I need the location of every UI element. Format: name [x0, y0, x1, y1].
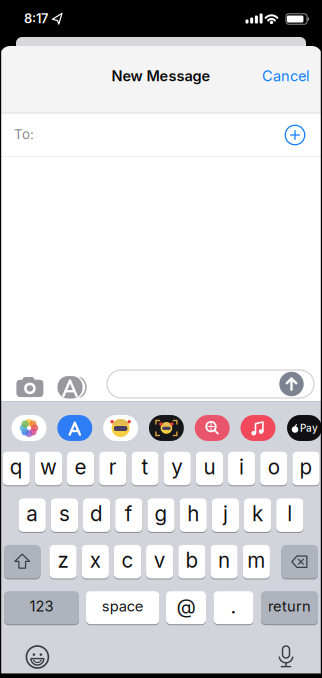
staticText: Cancel	[262, 67, 310, 85]
staticText: j	[223, 501, 228, 526]
button[interactable]: Apps	[57, 374, 91, 400]
button[interactable]: n	[210, 544, 238, 579]
button[interactable]: v	[146, 544, 173, 579]
staticText: g	[154, 501, 167, 526]
button[interactable]: z	[49, 544, 77, 579]
staticText: v	[154, 548, 166, 573]
staticText: o	[268, 454, 280, 479]
button[interactable]: Delete	[281, 544, 318, 579]
button[interactable]: y	[164, 451, 191, 486]
button[interactable]: l	[276, 497, 303, 533]
button[interactable]: h	[180, 497, 207, 533]
button[interactable]: k	[244, 497, 271, 533]
button[interactable]: q	[3, 451, 30, 486]
button[interactable]: Emoji	[25, 645, 49, 669]
button[interactable]: Photos	[11, 415, 46, 441]
button[interactable]: c	[114, 544, 141, 579]
staticText: s	[59, 501, 70, 526]
staticText: a	[26, 501, 38, 526]
staticText: m	[247, 548, 265, 573]
button[interactable]: g	[147, 497, 175, 533]
button[interactable]: s	[51, 497, 78, 533]
staticText: w	[40, 454, 57, 479]
staticText: u	[203, 454, 215, 479]
button[interactable]: #images	[195, 415, 230, 441]
button[interactable]: t	[131, 451, 159, 486]
button[interactable]: Cancel	[251, 61, 321, 91]
button[interactable]: @	[166, 590, 206, 625]
staticText: d	[90, 501, 103, 526]
staticText: .	[230, 594, 236, 618]
staticText: space	[102, 597, 144, 615]
staticText: l	[287, 501, 292, 526]
button[interactable]: p	[292, 451, 320, 486]
button[interactable]: j	[212, 497, 239, 533]
button[interactable]: Memoji	[149, 415, 184, 441]
button[interactable]: .	[213, 590, 253, 625]
button[interactable]: 123	[4, 590, 79, 625]
button[interactable]: d	[83, 497, 110, 533]
staticText: q	[10, 454, 23, 479]
staticText: t	[141, 454, 148, 479]
staticText: To:	[14, 126, 34, 142]
staticText: i	[239, 454, 244, 479]
button[interactable]: u	[196, 451, 223, 486]
button[interactable]: a	[19, 497, 46, 533]
staticText: x	[90, 548, 101, 573]
staticText: 8:17	[24, 11, 48, 26]
button[interactable]: return	[261, 590, 318, 625]
staticText: return	[268, 597, 311, 615]
button[interactable]: Music	[240, 415, 275, 441]
button[interactable]: x	[82, 544, 109, 579]
staticText: p	[299, 454, 312, 479]
button[interactable]: App Store	[57, 415, 92, 441]
button[interactable]: Apple Pay	[287, 415, 322, 441]
button[interactable]: r	[99, 451, 126, 486]
staticText: n	[218, 548, 230, 573]
staticText: z	[58, 548, 69, 573]
staticText: k	[252, 501, 263, 526]
button[interactable]: o	[260, 451, 287, 486]
staticText: r	[109, 454, 117, 479]
staticText: y	[171, 454, 183, 479]
button[interactable]: Dictation	[274, 644, 298, 670]
button[interactable]: e	[67, 451, 94, 486]
staticText: 123	[29, 597, 53, 615]
button[interactable]: f	[115, 497, 142, 533]
button[interactable]: space	[86, 590, 159, 625]
button[interactable]: w	[35, 451, 62, 486]
staticText: b	[185, 548, 198, 573]
staticText: e	[75, 454, 87, 479]
button[interactable]: Stickers	[103, 415, 138, 441]
button[interactable]: i	[228, 451, 255, 486]
staticText: @	[176, 594, 195, 618]
button[interactable]: Shift	[4, 544, 40, 579]
button[interactable]: Send	[279, 371, 304, 396]
staticText: New Message	[111, 67, 210, 85]
button[interactable]: m	[243, 544, 270, 579]
button[interactable]: Message	[107, 370, 314, 398]
staticText: c	[121, 548, 133, 573]
button[interactable]: b	[178, 544, 205, 579]
button[interactable]: Camera	[14, 375, 46, 401]
button[interactable]: Add Contact	[283, 123, 307, 147]
staticText: f	[125, 501, 133, 526]
staticText: h	[187, 501, 199, 526]
staticText: Pay	[300, 422, 318, 434]
